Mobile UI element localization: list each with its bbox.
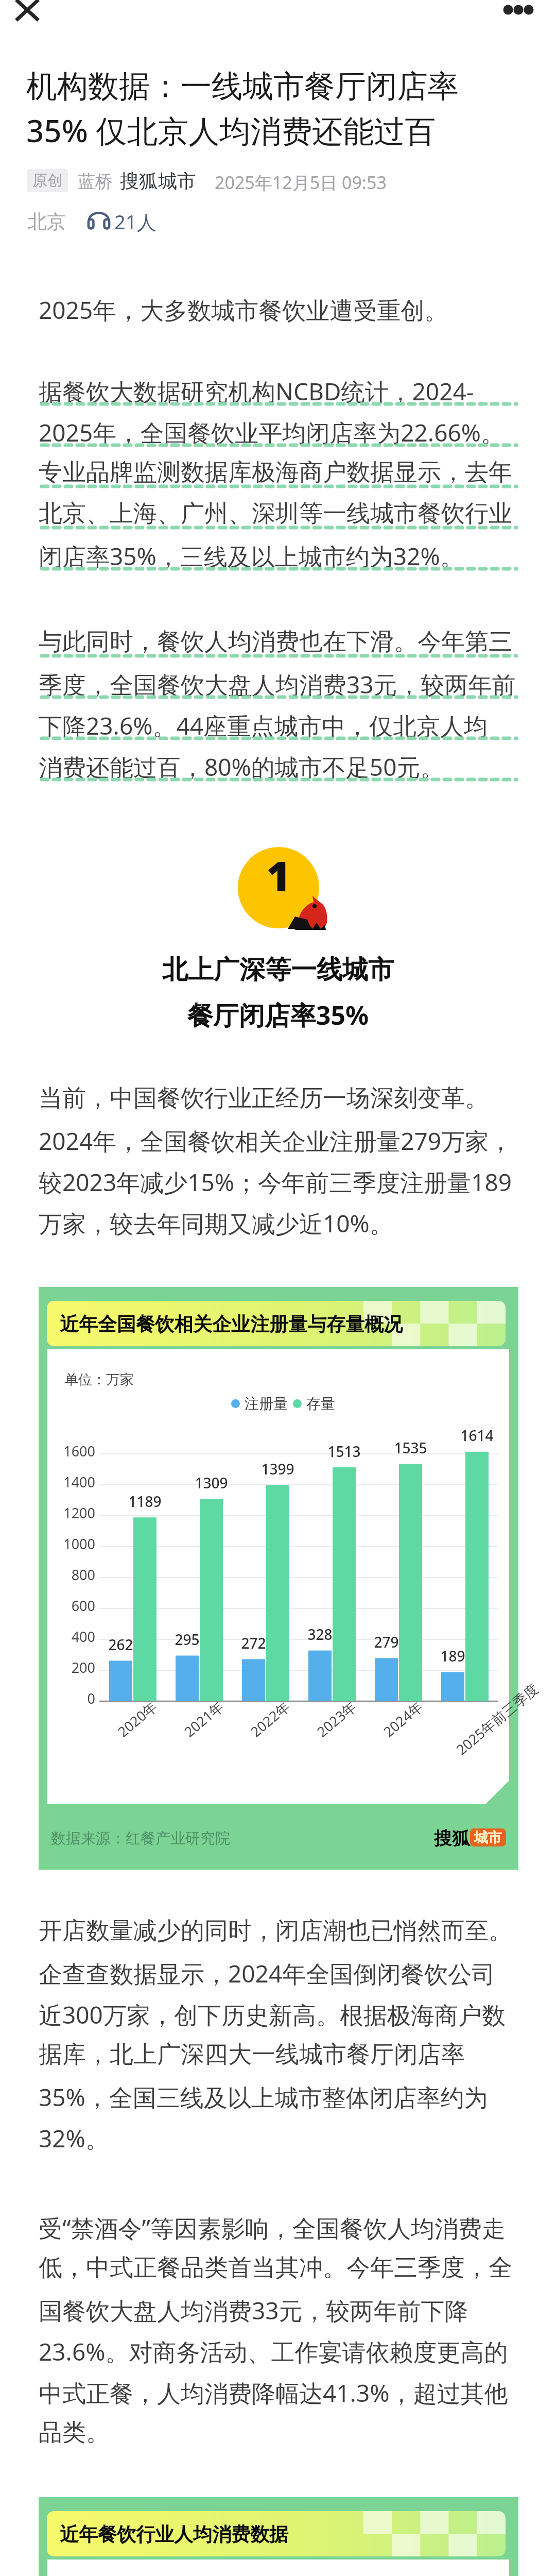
staticText: 较2023年减少15%；今年前三季度注册量189 bbox=[39, 1166, 512, 1198]
staticText: 开店数量减少的同时，闭店潮也已悄然而至。 bbox=[39, 1916, 512, 1946]
staticText: 企查查数据显示，2024年全国倒闭餐饮公司 bbox=[39, 1957, 496, 1990]
staticText: 近年全国餐饮相关企业注册量与存量概况 bbox=[60, 1312, 403, 1336]
staticText: 2025年前三季度 bbox=[452, 1679, 542, 1759]
staticText: 当前，中国餐饮行业正经历一场深刻变革。 bbox=[39, 1083, 489, 1113]
staticText: 机构数据：一线城市餐厅闭店率 bbox=[26, 67, 459, 106]
staticText: 1000 bbox=[51, 1534, 95, 1553]
staticText: 600 bbox=[51, 1596, 95, 1615]
staticText: 1309 bbox=[193, 1473, 230, 1493]
staticText: 2024年 bbox=[379, 1697, 427, 1741]
staticText: 1 bbox=[263, 847, 294, 903]
staticText: 2025年，全国餐饮业平均闭店率为22.66%。 bbox=[39, 416, 505, 449]
staticText: 1200 bbox=[51, 1503, 95, 1522]
staticText: 原创 bbox=[32, 171, 62, 190]
staticText: 低，中式正餐品类首当其冲。今年三季度，全 bbox=[39, 2253, 512, 2283]
staticText: 专业品牌监测数据库极海商户数据显示，去年 bbox=[39, 457, 512, 487]
staticText: 1535 bbox=[392, 1438, 429, 1458]
staticText: 北京、上海、广州、深圳等一线城市餐饮行业 bbox=[39, 499, 512, 529]
staticText: 272 bbox=[235, 1633, 272, 1653]
staticText: 据餐饮大数据研究机构NCBD统计，2024- bbox=[39, 375, 474, 408]
staticText: 下降23.6%。44座重点城市中，仅北京人均 bbox=[39, 709, 488, 742]
staticText: 21人 bbox=[114, 208, 157, 235]
staticText: 32%。 bbox=[39, 2122, 109, 2155]
staticText: 1600 bbox=[51, 1442, 95, 1461]
staticText: 1513 bbox=[326, 1442, 362, 1461]
staticText: 35%，全国三线及以上城市整体闭店率约为 bbox=[39, 2081, 488, 2113]
staticText: 1400 bbox=[51, 1472, 95, 1492]
staticText: 万家，较去年同期又减少近10%。 bbox=[39, 1207, 393, 1240]
staticText: 1189 bbox=[127, 1492, 163, 1511]
staticText: 北京 bbox=[28, 210, 66, 234]
staticText: 近300万家，创下历史新高。根据极海商户数 bbox=[39, 1998, 506, 2031]
staticText: 城市 bbox=[474, 1829, 502, 1846]
staticText: 单位：万家 bbox=[64, 1371, 134, 1388]
staticText: 季度，全国餐饮大盘人均消费33元，较两年前 bbox=[39, 668, 516, 701]
button[interactable]: Close bbox=[12, 0, 42, 26]
staticText: 279 bbox=[368, 1632, 405, 1652]
staticText: 国餐饮大盘人均消费33元，较两年前下降 bbox=[39, 2294, 468, 2327]
staticText: 2020年 bbox=[114, 1697, 161, 1741]
staticText: 1614 bbox=[459, 1426, 495, 1445]
staticText: 受“禁酒令”等因素影响，全国餐饮人均消费走 bbox=[39, 2212, 506, 2244]
staticText: 295 bbox=[169, 1630, 205, 1649]
staticText: 1399 bbox=[259, 1459, 296, 1479]
staticText: 262 bbox=[102, 1635, 139, 1654]
staticText: 消费还能过百，80%的城市不足50元。 bbox=[39, 751, 444, 783]
staticText: 搜狐 bbox=[434, 1827, 470, 1850]
staticText: 0 bbox=[51, 1689, 95, 1708]
staticText: 蓝桥 bbox=[78, 171, 113, 193]
staticText: 北上广深等一线城市 bbox=[0, 954, 556, 986]
staticText: 189 bbox=[435, 1646, 471, 1666]
staticText: 与此同时，餐饮人均消费也在下滑。今年第三 bbox=[39, 627, 512, 657]
staticText: 数据来源：红餐产业研究院 bbox=[51, 1829, 230, 1848]
staticText: 餐厅闭店率35% bbox=[0, 997, 556, 1032]
staticText: 存量 bbox=[306, 1395, 335, 1413]
staticText: 据库，北上广深四大一线城市餐厅闭店率 bbox=[39, 2040, 465, 2070]
staticText: 200 bbox=[51, 1658, 95, 1677]
staticText: 搜狐城市 bbox=[120, 169, 196, 193]
staticText: 近年餐饮行业人均消费数据 bbox=[60, 2522, 288, 2547]
staticText: 2023年 bbox=[313, 1697, 360, 1741]
staticText: 2024年，全国餐饮相关企业注册量279万家， bbox=[39, 1125, 513, 1157]
staticText: 注册量 bbox=[245, 1395, 288, 1413]
staticText: 35% 仅北京人均消费还能过百 bbox=[26, 109, 436, 151]
staticText: 23.6%。对商务活动、工作宴请依赖度更高的 bbox=[39, 2335, 508, 2368]
staticText: 2025年，大多数城市餐饮业遭受重创。 bbox=[39, 294, 448, 326]
staticText: 2021年 bbox=[180, 1697, 227, 1741]
staticText: 闭店率35%，三线及以上城市约为32%。 bbox=[39, 540, 464, 572]
staticText: 800 bbox=[51, 1565, 95, 1584]
staticText: 400 bbox=[51, 1627, 95, 1646]
staticText: 2025年12月5日 09:53 bbox=[215, 171, 387, 194]
staticText: 328 bbox=[302, 1624, 338, 1644]
staticText: 品类。 bbox=[39, 2418, 110, 2448]
button[interactable]: 21人 bbox=[86, 208, 157, 235]
staticText: 2022年 bbox=[246, 1697, 294, 1741]
staticText: 中式正餐，人均消费降幅达41.3%，超过其他 bbox=[39, 2377, 508, 2409]
button[interactable]: More options bbox=[494, 0, 546, 23]
